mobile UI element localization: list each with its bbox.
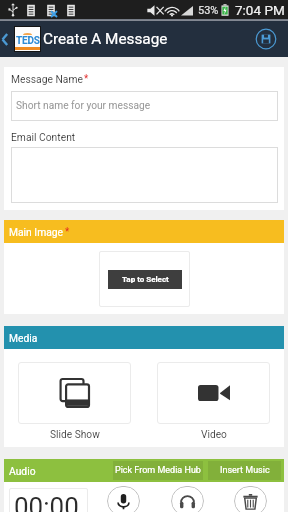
staticText: 53% xyxy=(198,4,219,17)
staticText: Pick From Media Hub xyxy=(115,465,201,476)
button[interactable]: Back xyxy=(0,21,14,57)
button[interactable]: Listen xyxy=(171,486,204,512)
button[interactable]: TEDS logo xyxy=(15,27,40,51)
staticText: Audio xyxy=(9,465,36,477)
staticText: 00:00 xyxy=(14,492,79,512)
staticText: * xyxy=(84,73,89,85)
staticText: Short name for your message xyxy=(16,100,151,112)
staticText: 7:04 PM xyxy=(235,2,285,18)
button[interactable]: Record xyxy=(107,486,140,512)
staticText: * xyxy=(65,226,70,238)
staticText: Slide Show xyxy=(50,429,100,441)
staticText: Message Name xyxy=(11,73,83,85)
button[interactable]: Insert Music xyxy=(208,461,281,480)
staticText: Insert Music xyxy=(220,465,270,476)
staticText: Video xyxy=(201,429,227,441)
staticText: Email Content xyxy=(11,131,76,143)
button[interactable]: Delete xyxy=(234,486,267,512)
staticText: TEDS xyxy=(16,35,40,47)
button[interactable]: Save xyxy=(251,24,281,54)
button[interactable]: Pick From Media Hub xyxy=(113,461,203,480)
staticText: Main Image xyxy=(9,226,64,238)
button[interactable]: Slide Show xyxy=(18,362,131,441)
button[interactable]: Tap to Select xyxy=(108,270,182,289)
staticText: Tap to Select xyxy=(122,275,169,284)
staticText: Media xyxy=(9,332,38,344)
button[interactable]: Video xyxy=(157,362,270,441)
staticText: Create A Message xyxy=(43,30,168,48)
